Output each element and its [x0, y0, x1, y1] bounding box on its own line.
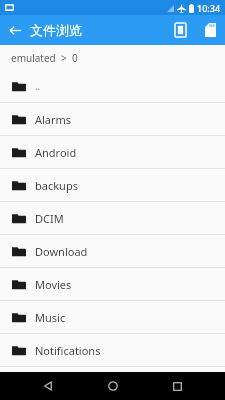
button[interactable]: Home [96, 372, 130, 400]
button[interactable]: Android [0, 136, 225, 168]
button[interactable]: Notifications [0, 334, 225, 366]
staticText: Alarms [35, 112, 72, 127]
button[interactable]: Back [31, 372, 65, 400]
staticText: 文件浏览 [30, 22, 82, 38]
button[interactable]: Alarms [0, 103, 225, 135]
staticText: Download [35, 244, 88, 259]
button[interactable]: Download [0, 235, 225, 267]
staticText: Music [35, 310, 66, 325]
staticText: Movies [35, 277, 72, 292]
button[interactable]: Back [0, 15, 30, 45]
button[interactable]: Music [0, 301, 225, 333]
button[interactable]: emulated > 0 [0, 45, 225, 70]
button[interactable]: Recent apps [160, 372, 194, 400]
staticText: 10:34 [197, 2, 221, 14]
staticText: DCIM [35, 211, 64, 226]
staticText: .. [35, 80, 40, 92]
staticText: Notifications [35, 343, 101, 358]
staticText: Android [35, 145, 77, 160]
button[interactable]: Internal storage [165, 15, 195, 45]
button[interactable]: Movies [0, 268, 225, 300]
staticText: emulated > 0 [11, 51, 78, 65]
button[interactable]: backups [0, 169, 225, 201]
staticText: backups [35, 178, 78, 193]
button[interactable]: DCIM [0, 202, 225, 234]
button[interactable]: SD card [195, 15, 225, 45]
button[interactable]: .. [0, 70, 225, 102]
